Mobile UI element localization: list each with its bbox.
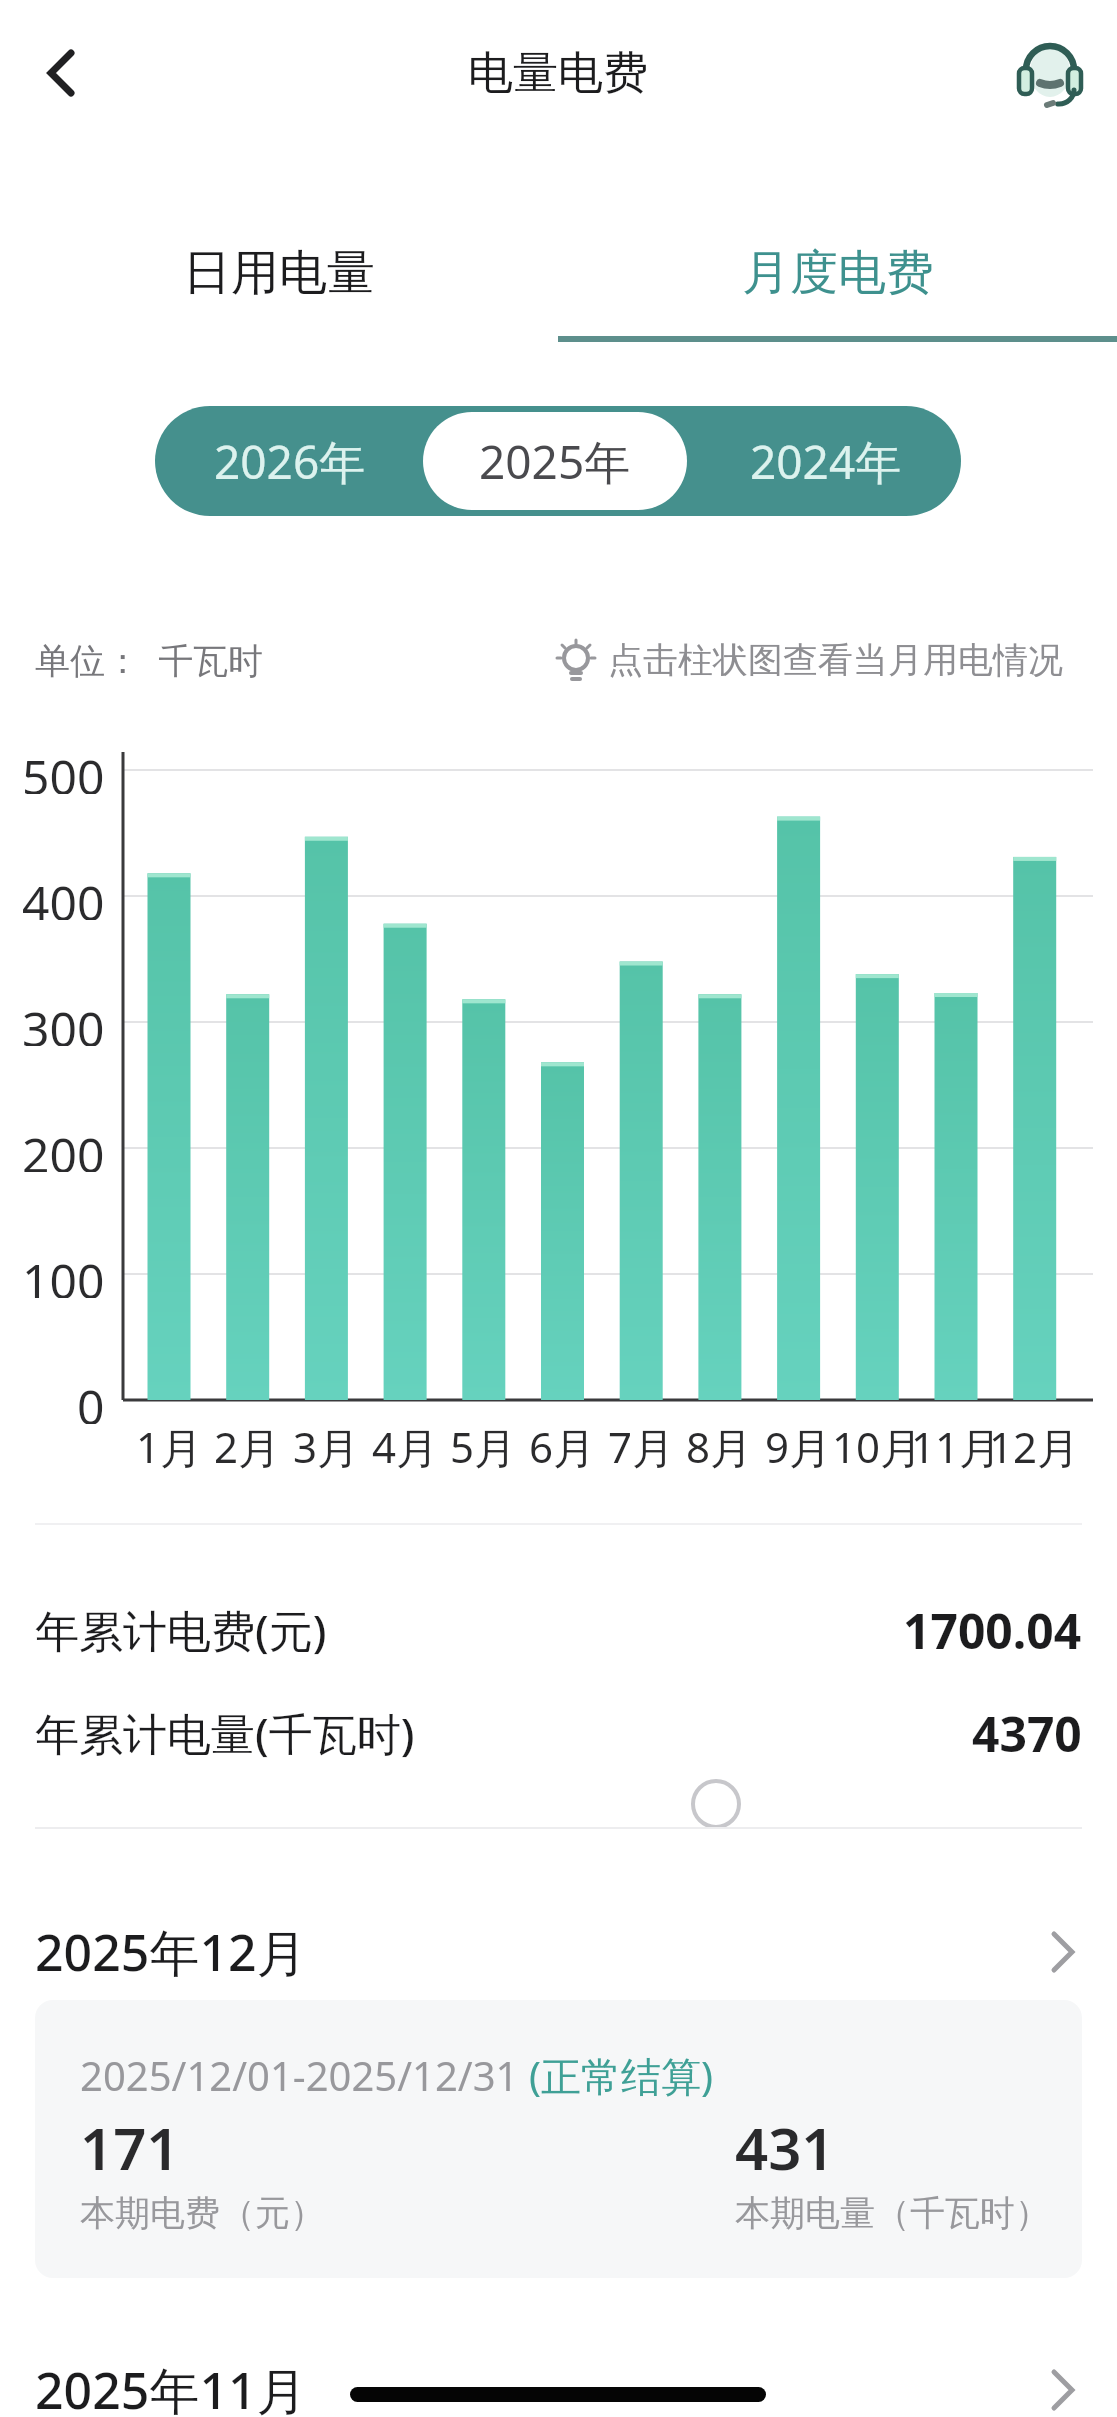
staticText: 100 xyxy=(22,1248,105,1298)
staticText: 2025/12/01-2025/12/31 xyxy=(80,2048,529,2102)
staticText: 171 xyxy=(80,2108,180,2180)
staticText: 年累计电量(千瓦时) xyxy=(35,1703,415,1763)
staticText: 400 xyxy=(22,870,105,920)
staticText: 10月 xyxy=(832,1418,923,1474)
staticText: 4月 xyxy=(372,1418,439,1474)
staticText: 本期电费（元） xyxy=(80,2191,325,2235)
staticText: 2024年 xyxy=(750,430,902,493)
staticText: 12月 xyxy=(989,1418,1080,1474)
staticText: 点击柱状图查看当月用电情况 xyxy=(608,638,1063,682)
button[interactable]: 日用电量 xyxy=(0,238,558,308)
button[interactable]: 2025年11月 xyxy=(35,2354,1082,2417)
staticText: (正常结算) xyxy=(529,2048,713,2103)
staticText: 0 xyxy=(77,1374,105,1424)
staticText: 7月 xyxy=(608,1418,675,1474)
button[interactable]: 月度电费 xyxy=(559,238,1117,308)
staticText: 200 xyxy=(22,1122,105,1172)
button[interactable]: 2025年 xyxy=(423,412,687,510)
button[interactable]: 2025年12月 xyxy=(35,1916,1082,1988)
staticText: 6月 xyxy=(529,1418,596,1474)
staticText: 月度电费 xyxy=(742,243,934,303)
button[interactable]: 2026年 xyxy=(155,406,425,516)
button[interactable] xyxy=(30,40,96,106)
staticText: 1月 xyxy=(136,1418,203,1474)
staticText: 3月 xyxy=(293,1418,360,1474)
staticText: 8月 xyxy=(686,1418,753,1474)
staticText: 电量电费 xyxy=(468,45,648,102)
staticText: 2025年12月 xyxy=(35,1918,307,1986)
staticText: 2025年11月 xyxy=(35,2356,307,2417)
staticText: 日用电量 xyxy=(183,243,375,303)
staticText: 2025年 xyxy=(479,430,631,493)
button[interactable]: 2024年 xyxy=(691,406,961,516)
staticText: 11月 xyxy=(911,1418,1002,1474)
staticText: 9月 xyxy=(765,1418,832,1474)
staticText: 2月 xyxy=(214,1418,281,1474)
staticText: 431 xyxy=(735,2108,835,2180)
staticText: 本期电量（千瓦时） xyxy=(735,2191,1050,2235)
staticText: 单位： 千瓦时 xyxy=(35,636,264,684)
button[interactable] xyxy=(1008,30,1092,114)
staticText: 300 xyxy=(22,996,105,1046)
staticText: 5月 xyxy=(450,1418,517,1474)
staticText: 4370 xyxy=(972,1701,1082,1765)
button[interactable]: 2025/12/01-2025/12/31 xyxy=(35,2000,1082,2278)
staticText: 2026年 xyxy=(214,430,366,493)
staticText: 年累计电费(元) xyxy=(35,1600,327,1660)
staticText: 500 xyxy=(22,744,105,794)
staticText: 1700.04 xyxy=(903,1598,1082,1662)
